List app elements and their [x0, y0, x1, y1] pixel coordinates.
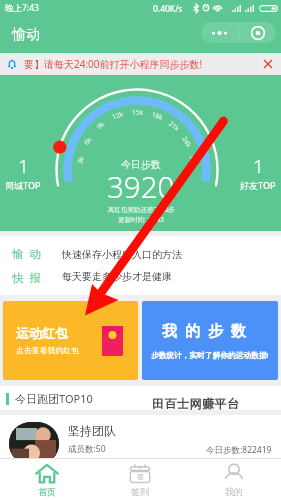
staticText: 今日步数 — [121, 158, 161, 171]
staticText: 同城TOP — [5, 179, 41, 191]
staticText: 田百士网赚平台 — [152, 396, 240, 411]
staticText: 我 的 步 数 — [162, 320, 248, 340]
staticText: 愉动 — [12, 26, 40, 44]
button[interactable]: More — [201, 22, 238, 43]
button[interactable]: 运动红包 — [3, 301, 138, 380]
staticText: 3920 — [107, 166, 175, 206]
button[interactable]: 首页 — [0, 459, 93, 500]
staticText: 9k — [94, 119, 106, 131]
staticText: 快 报 — [12, 270, 43, 286]
staticText: 24k — [180, 135, 193, 149]
staticText: 18k — [151, 109, 164, 122]
staticText: 成员数:50 — [68, 443, 106, 455]
staticText: 步数统计，实时了解你的运动数据! — [151, 350, 269, 361]
staticText: 愉 动 — [12, 246, 43, 262]
staticText: 点击查看我的红包 — [16, 346, 80, 355]
button[interactable]: 1 — [240, 153, 276, 191]
staticText: 今日跑团TOP10 — [15, 391, 93, 406]
button[interactable]: 签 — [93, 459, 187, 500]
button[interactable]: 快速保存小程序入口的方法 — [62, 248, 182, 261]
button[interactable]: 我的 — [187, 459, 281, 500]
staticText: 好友TOP — [240, 179, 276, 191]
staticText: 更新时间: 19:43 — [118, 215, 165, 224]
staticText: 坚持团队 — [68, 423, 116, 438]
button[interactable]: 每天要走多少步才是健康 — [62, 270, 172, 283]
staticText: 1 — [18, 153, 29, 179]
staticText: 要】请每天24:00前打开小程序同步步数! — [24, 57, 203, 71]
staticText: 30k — [188, 154, 199, 167]
button[interactable]: 我 的 步 数 — [142, 301, 278, 380]
button[interactable]: Close app — [239, 22, 276, 43]
staticText: 12k — [111, 109, 124, 121]
staticText: 首页 — [38, 486, 56, 497]
button[interactable]: Close banner — [261, 57, 275, 71]
button[interactable]: 1 — [5, 153, 41, 191]
staticText: 我的 — [225, 486, 243, 497]
staticText: 签到 — [131, 486, 149, 497]
staticText: 离红包奖励还差2080步 — [108, 205, 175, 214]
staticText: 运动红包 — [16, 325, 68, 341]
staticText: 今日步数:822419 — [206, 444, 272, 456]
staticText: 6k — [81, 135, 93, 147]
staticText: 3k — [75, 155, 86, 165]
button[interactable]: 坚持团队 — [0, 415, 281, 458]
staticText: 晚上7:43 — [5, 2, 39, 14]
staticText: 1 — [253, 153, 264, 179]
staticText: 21k — [167, 119, 181, 133]
staticText: 15k — [132, 108, 143, 117]
staticText: 0.40K/s — [153, 3, 183, 15]
staticText: 签 — [137, 472, 144, 481]
